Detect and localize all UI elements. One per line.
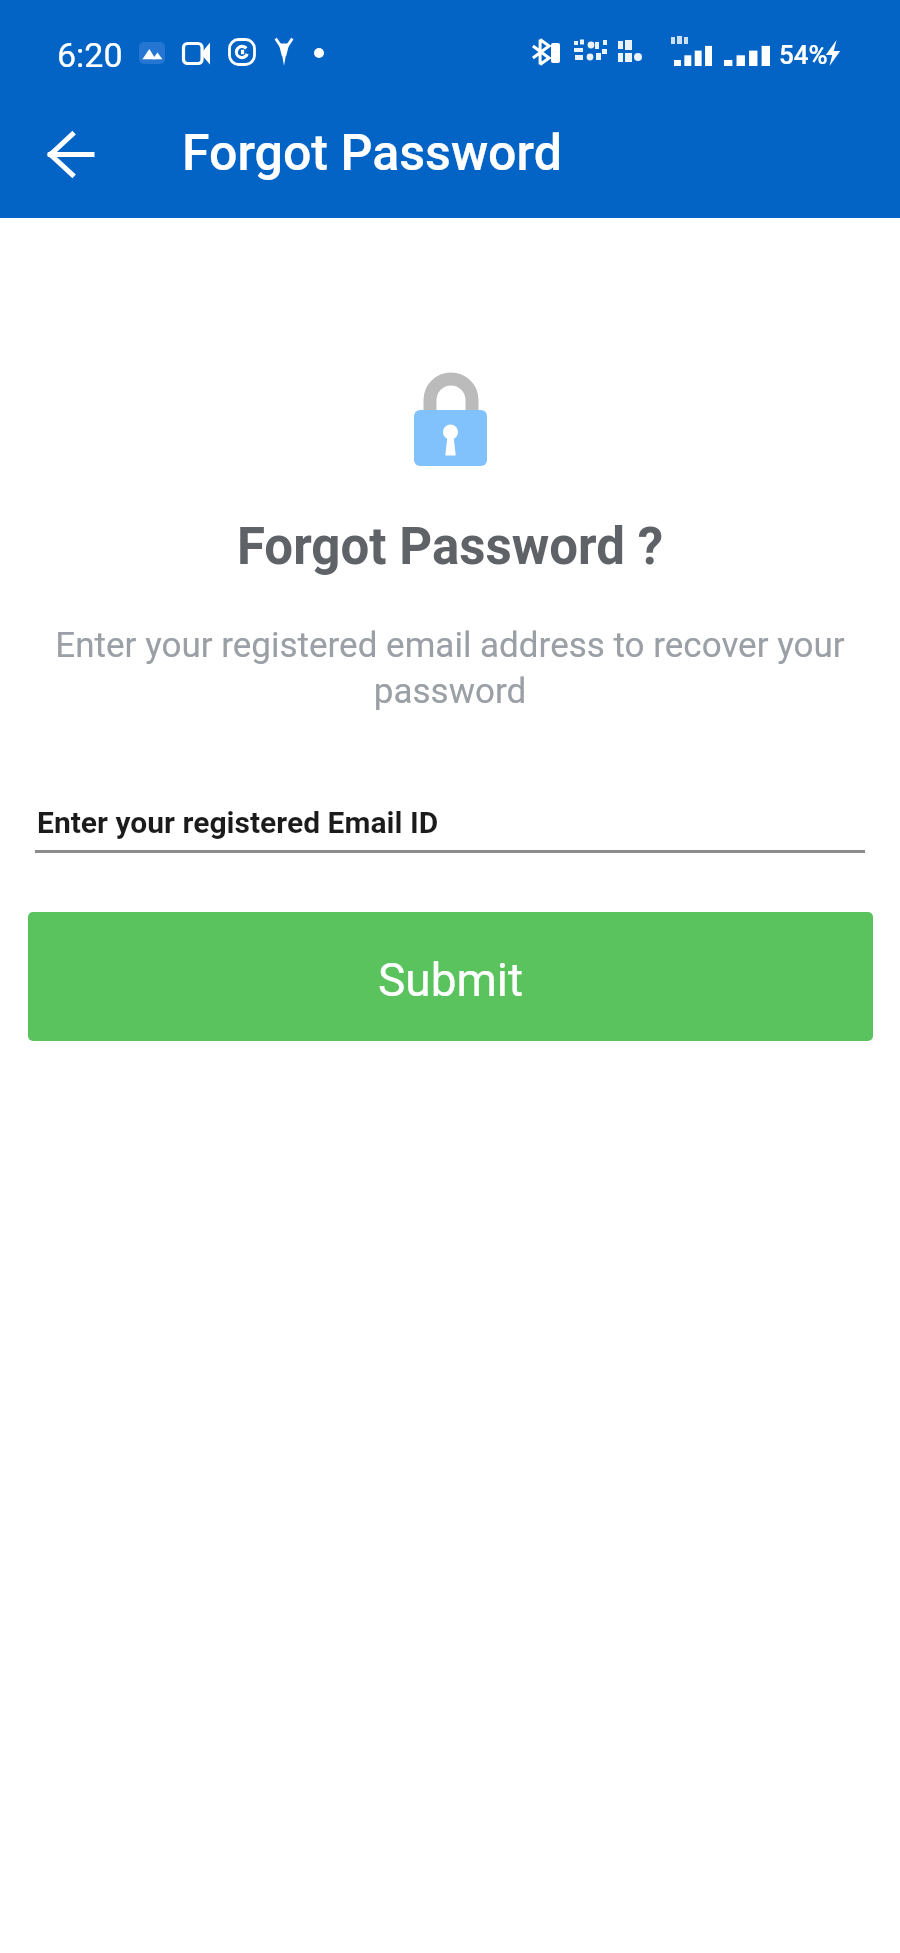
staticText: 6:20: [57, 35, 123, 75]
staticText: 54%: [779, 40, 828, 70]
button[interactable]: Submit: [28, 912, 873, 1041]
staticText: Forgot Password: [182, 124, 562, 183]
staticText: Enter your registered email address to r…: [46, 625, 854, 711]
staticText: Enter your registered Email ID: [37, 805, 439, 840]
staticText: Submit: [378, 953, 524, 1007]
button[interactable]: Enter your registered Email ID: [35, 790, 865, 853]
staticText: Forgot Password ?: [0, 517, 900, 577]
button[interactable]: Back: [24, 108, 116, 200]
